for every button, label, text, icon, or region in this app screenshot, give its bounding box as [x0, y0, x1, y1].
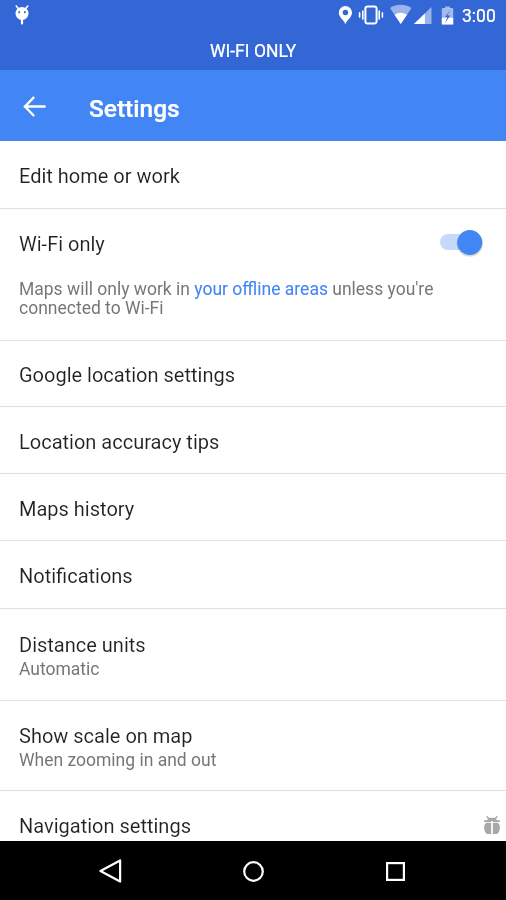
staticText: WI-FI ONLY	[210, 41, 297, 62]
staticText: Maps history	[19, 497, 135, 520]
staticText: Location accuracy tips	[19, 430, 220, 453]
staticText: Notifications	[19, 564, 133, 587]
staticText: Wi-Fi only	[19, 232, 105, 255]
button[interactable]: Location accuracy tips	[0, 407, 506, 473]
staticText: Navigation settings	[19, 814, 191, 837]
button[interactable]: Google location settings	[0, 341, 506, 406]
button[interactable]: Notifications	[0, 541, 506, 608]
staticText: When zooming in and out	[19, 750, 217, 771]
button[interactable]: Back	[6, 78, 62, 134]
staticText: Distance units	[19, 633, 146, 656]
button[interactable]: Navigation settings	[0, 791, 506, 858]
button[interactable]: Recent apps	[371, 847, 419, 895]
button[interactable]: Wi-Fi only	[0, 209, 506, 275]
button[interactable]: Distance units	[0, 609, 506, 700]
staticText: Edit home or work	[19, 164, 180, 187]
staticText: Google location settings	[19, 363, 236, 386]
staticText: Automatic	[19, 659, 100, 680]
staticText: Maps will only work in your offline area…	[19, 279, 456, 319]
staticText: Show scale on map	[19, 724, 193, 747]
button[interactable]: Maps history	[0, 474, 506, 540]
button[interactable]: Back	[87, 847, 135, 895]
staticText: Settings	[89, 94, 180, 123]
button[interactable]: Edit home or work	[0, 141, 506, 208]
staticText: 3:00	[462, 6, 496, 27]
button[interactable]: Home	[229, 847, 277, 895]
button[interactable]: Show scale on map	[0, 701, 506, 790]
